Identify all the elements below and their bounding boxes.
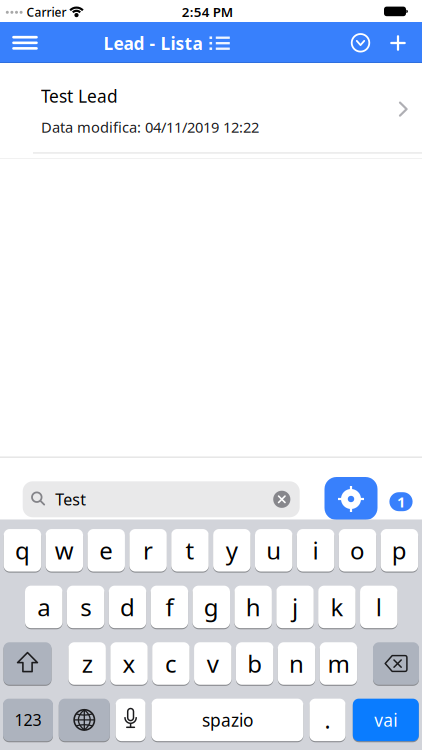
staticText: g — [204, 591, 219, 623]
staticText: z — [82, 648, 93, 679]
button[interactable]: Numbers — [3, 698, 53, 742]
button[interactable]: t — [171, 528, 209, 572]
button[interactable]: s — [67, 585, 104, 629]
staticText: s — [80, 591, 91, 623]
staticText: Test Lead — [41, 84, 118, 107]
staticText: u — [266, 534, 281, 566]
button[interactable]: o — [339, 528, 376, 572]
staticText: 123 — [14, 709, 41, 730]
button[interactable]: a — [25, 585, 62, 629]
button[interactable]: f — [151, 585, 188, 629]
button[interactable]: Period — [309, 698, 346, 742]
staticText: Data modifica: 04/11/2019 12:22 — [41, 117, 259, 137]
staticText: f — [165, 591, 173, 623]
button[interactable]: Clear text — [270, 487, 294, 511]
button[interactable]: Delete — [373, 642, 419, 685]
button[interactable]: Test Lead — [0, 63, 422, 153]
button[interactable]: Next keyboard — [59, 698, 110, 742]
button[interactable]: Shift — [3, 642, 51, 685]
button[interactable]: q — [4, 528, 41, 572]
staticText: Lead - Lista — [103, 32, 202, 55]
button[interactable]: u — [255, 528, 292, 572]
button[interactable]: Collapse — [343, 24, 377, 62]
staticText: x — [122, 648, 135, 679]
button[interactable]: i — [297, 528, 334, 572]
staticText: spazio — [202, 708, 253, 731]
staticText: j — [292, 591, 298, 623]
button[interactable]: x — [110, 642, 148, 685]
button[interactable]: k — [318, 585, 356, 629]
button[interactable]: Space — [151, 698, 303, 742]
button[interactable]: Menu — [3, 24, 47, 62]
button[interactable]: z — [68, 642, 106, 685]
button[interactable]: g — [192, 585, 230, 629]
staticText: v — [207, 648, 219, 679]
staticText: 1 — [397, 492, 405, 511]
staticText: 2:54 PM — [182, 3, 233, 21]
staticText: y — [226, 534, 238, 566]
staticText: l — [376, 591, 382, 623]
staticText: k — [330, 591, 343, 623]
staticText: q — [15, 534, 30, 566]
button[interactable]: v — [194, 642, 231, 685]
button[interactable]: d — [109, 585, 146, 629]
button[interactable]: p — [381, 528, 418, 572]
button[interactable]: l — [360, 585, 397, 629]
staticText: d — [120, 591, 135, 623]
staticText: c — [165, 648, 177, 679]
staticText: vai — [374, 708, 397, 731]
staticText: n — [289, 648, 304, 679]
staticText: b — [247, 648, 262, 679]
staticText: m — [327, 648, 349, 679]
button[interactable]: Go — [353, 698, 419, 742]
button[interactable]: c — [152, 642, 190, 685]
staticText: r — [143, 534, 153, 566]
button[interactable]: y — [213, 528, 251, 572]
staticText: Test — [55, 489, 86, 510]
button[interactable]: Search settings — [324, 477, 377, 520]
staticText: a — [37, 591, 50, 623]
staticText: w — [55, 534, 74, 566]
button[interactable]: w — [46, 528, 83, 572]
staticText: Carrier — [26, 4, 66, 20]
button[interactable]: b — [236, 642, 273, 685]
button[interactable]: Dictate — [116, 698, 146, 742]
staticText: . — [324, 705, 330, 735]
staticText: o — [350, 534, 365, 566]
button[interactable]: h — [234, 585, 272, 629]
button[interactable]: n — [278, 642, 315, 685]
button[interactable]: m — [320, 642, 357, 685]
staticText: p — [392, 534, 407, 566]
staticText: e — [99, 534, 113, 566]
staticText: t — [185, 534, 194, 566]
button[interactable]: Add — [381, 24, 415, 62]
button[interactable]: r — [129, 528, 167, 572]
button[interactable]: e — [87, 528, 125, 572]
staticText: h — [246, 591, 261, 623]
button[interactable]: j — [276, 585, 314, 629]
staticText: i — [313, 534, 319, 566]
